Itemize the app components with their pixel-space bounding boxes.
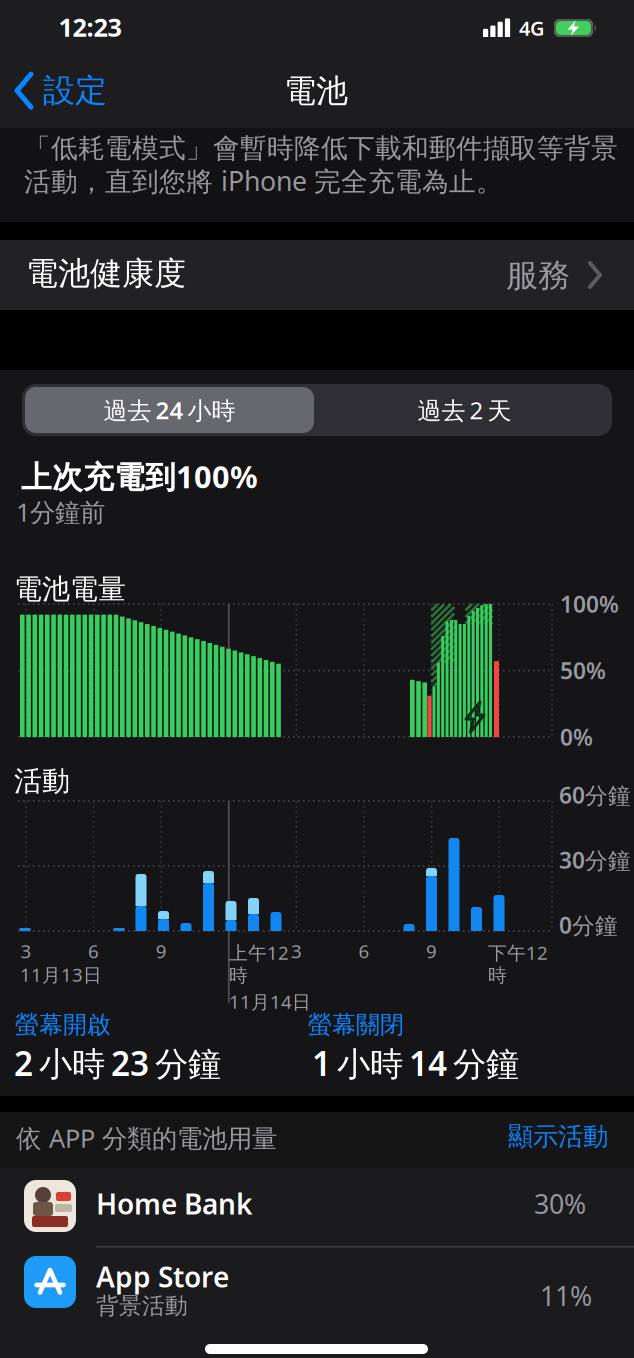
- staticText: 2 小時 23 分鐘: [14, 1041, 221, 1085]
- staticText: 顯示活動: [508, 1121, 608, 1152]
- button[interactable]: App Store: [0, 1248, 634, 1358]
- staticText: 9: [156, 939, 167, 963]
- staticText: 電池: [284, 71, 348, 111]
- button[interactable]: Home Bank: [0, 1168, 634, 1246]
- staticText: 60分鐘: [559, 780, 631, 810]
- button[interactable]: 顯示活動: [508, 1121, 608, 1152]
- staticText: 6: [358, 939, 369, 963]
- staticText: 100%: [560, 589, 619, 619]
- staticText: 螢幕關閉: [308, 1010, 404, 1039]
- button[interactable]: 過去 2 天: [320, 387, 609, 433]
- staticText: 0%: [560, 722, 593, 752]
- button[interactable]: 設定: [14, 71, 107, 110]
- staticText: 30%: [534, 1186, 586, 1221]
- staticText: 4G: [519, 15, 545, 41]
- staticText: 12:23: [58, 10, 121, 44]
- staticText: Home Bank: [96, 1185, 252, 1222]
- button[interactable]: 過去 24 小時: [25, 387, 314, 433]
- staticText: 電池電量: [14, 572, 126, 606]
- staticText: 依 APP 分類的電池用量: [16, 1121, 277, 1155]
- staticText: 設定: [43, 71, 107, 110]
- staticText: 6: [88, 939, 99, 963]
- staticText: 30分鐘: [559, 845, 631, 875]
- staticText: 1分鐘前: [16, 495, 105, 529]
- staticText: 時: [229, 964, 248, 987]
- staticText: 9: [426, 939, 437, 963]
- staticText: 電池健康度: [26, 254, 186, 293]
- staticText: 上次充電到100%: [21, 456, 258, 497]
- staticText: 3: [291, 939, 302, 963]
- staticText: 時: [488, 964, 507, 987]
- button[interactable]: 電池健康度: [0, 240, 634, 310]
- staticText: 背景活動: [96, 1292, 188, 1320]
- staticText: 下午12: [488, 940, 548, 965]
- staticText: 過去 24 小時: [103, 394, 235, 426]
- staticText: 活動: [14, 764, 70, 798]
- staticText: 11月13日: [20, 962, 102, 987]
- staticText: 11月14日: [229, 989, 311, 1014]
- staticText: 50%: [560, 655, 606, 686]
- staticText: 活動，直到您將 iPhone 完全充電為止。: [24, 163, 503, 198]
- staticText: 螢幕開啟: [15, 1010, 111, 1039]
- staticText: 1 小時 14 分鐘: [312, 1041, 519, 1085]
- staticText: 「低耗電模式」會暫時降低下載和郵件擷取等背景: [24, 132, 618, 165]
- staticText: 過去 2 天: [417, 394, 511, 426]
- staticText: 3: [20, 939, 31, 963]
- staticText: 11%: [540, 1278, 592, 1313]
- staticText: App Store: [96, 1258, 229, 1295]
- staticText: 上午12: [229, 940, 289, 965]
- staticText: 服務: [506, 256, 570, 295]
- staticText: 0分鐘: [559, 910, 618, 940]
